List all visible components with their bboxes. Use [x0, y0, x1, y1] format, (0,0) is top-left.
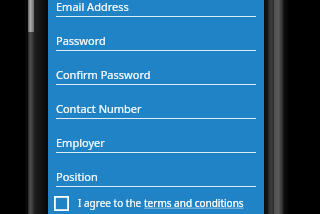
- other: Volume button: [28, 0, 34, 32]
- staticText: I agree to the: [78, 196, 144, 210]
- button[interactable]: Email Address: [56, 0, 256, 17]
- staticText: Position: [56, 169, 98, 184]
- button[interactable]: terms and conditions: [144, 196, 244, 210]
- button[interactable]: Confirm Password: [56, 60, 256, 85]
- button[interactable]: Employer: [56, 128, 256, 153]
- other: Agree to terms checkbox: [54, 196, 69, 211]
- staticText: Contact Number: [56, 101, 142, 116]
- button[interactable]: Position: [56, 162, 256, 187]
- staticText: Confirm Password: [56, 67, 151, 82]
- staticText: terms and conditions: [144, 196, 244, 210]
- button[interactable]: Password: [56, 26, 256, 51]
- staticText: Employer: [56, 135, 105, 150]
- staticText: Password: [56, 33, 106, 48]
- button[interactable]: Agree to terms checkbox: [54, 192, 264, 214]
- button[interactable]: Contact Number: [56, 94, 256, 119]
- staticText: Email Address: [56, 0, 129, 14]
